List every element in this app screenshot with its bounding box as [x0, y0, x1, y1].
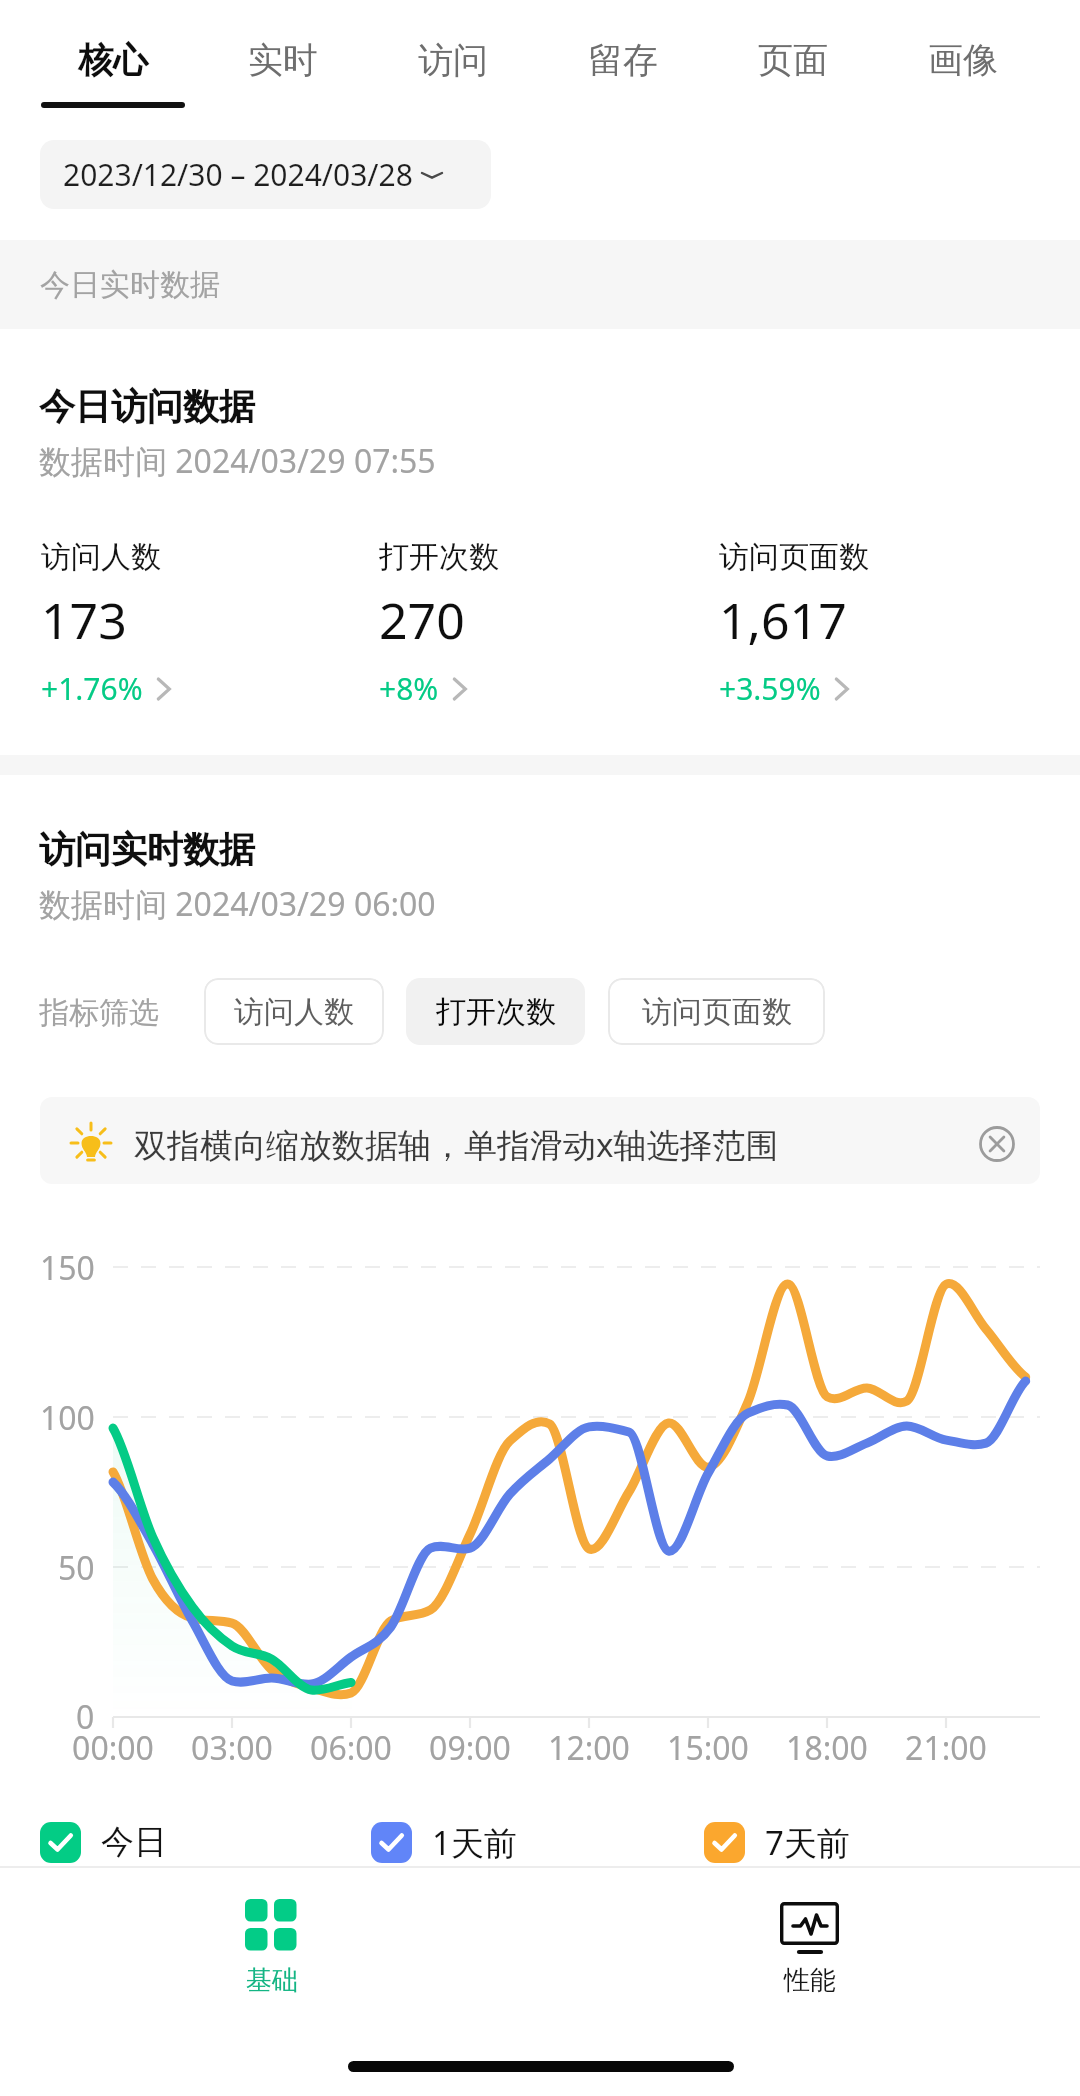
staticText: 150 — [40, 1246, 95, 1290]
button[interactable]: 1天前 — [371, 1814, 517, 1870]
staticText: 7天前 — [765, 1820, 850, 1865]
staticText: 今日访问数据 — [39, 384, 255, 429]
staticText: 访问实时数据 — [39, 827, 255, 872]
staticText: 03:00 — [191, 1726, 273, 1770]
staticText: 留存 — [588, 38, 658, 82]
button[interactable]: 今日 — [40, 1814, 167, 1870]
button[interactable]: 实时 — [200, 0, 366, 118]
staticText: 06:00 — [310, 1726, 392, 1770]
button[interactable]: 访问 — [370, 0, 536, 118]
button[interactable]: 关闭提示 — [969, 1116, 1025, 1172]
staticText: +1.76% — [41, 668, 143, 709]
staticText: 0 — [76, 1695, 95, 1739]
staticText: 15:00 — [667, 1726, 749, 1770]
staticText: 画像 — [928, 38, 998, 82]
staticText: 实时 — [248, 38, 318, 82]
button[interactable]: 访问人数 — [40, 538, 370, 708]
button[interactable]: 留存 — [540, 0, 706, 118]
staticText: 00:00 — [72, 1726, 154, 1770]
staticText: 18:00 — [786, 1726, 868, 1770]
button[interactable]: 打开次数 — [406, 978, 585, 1045]
staticText: 指标筛选 — [39, 994, 159, 1032]
staticText: 1,617 — [719, 586, 847, 654]
button[interactable]: 画像 — [880, 0, 1046, 118]
staticText: 数据时间 2024/03/29 07:55 — [39, 439, 436, 483]
staticText: 双指横向缩放数据轴，单指滑动x轴选择范围 — [134, 1122, 779, 1167]
staticText: 访问人数 — [41, 538, 161, 576]
button[interactable]: 页面 — [710, 0, 876, 118]
staticText: 173 — [41, 586, 127, 654]
staticText: +3.59% — [719, 668, 821, 709]
button[interactable]: 访问人数 — [204, 978, 384, 1045]
staticText: +8% — [379, 668, 439, 709]
staticText: 打开次数 — [379, 538, 499, 576]
button[interactable]: 打开次数 — [378, 538, 708, 708]
staticText: 访问页面数 — [719, 538, 869, 576]
staticText: 访问 — [418, 38, 488, 82]
staticText: 基础 — [246, 1964, 298, 1997]
staticText: 访问页面数 — [642, 993, 792, 1031]
staticText: 270 — [379, 586, 465, 654]
staticText: 数据时间 2024/03/29 06:00 — [39, 882, 436, 926]
staticText: 100 — [40, 1396, 95, 1440]
button[interactable]: 核心 — [30, 0, 196, 118]
staticText: 1天前 — [432, 1820, 517, 1865]
staticText: 打开次数 — [436, 993, 556, 1031]
staticText: 09:00 — [429, 1726, 511, 1770]
staticText: 50 — [58, 1546, 95, 1590]
staticText: 今日实时数据 — [40, 266, 220, 304]
button[interactable]: 基础 — [191, 1888, 351, 2014]
staticText: 2023/12/30 – 2024/03/28 — [63, 154, 413, 195]
staticText: 今日 — [101, 1821, 167, 1863]
staticText: 核心 — [78, 38, 148, 82]
button[interactable]: 2023/12/30 – 2024/03/28 — [40, 140, 491, 209]
button[interactable]: 性能 — [730, 1888, 890, 2014]
button[interactable]: 7天前 — [704, 1814, 850, 1870]
button[interactable]: 访问页面数 — [718, 538, 1048, 708]
staticText: 性能 — [784, 1964, 836, 1997]
staticText: 12:00 — [548, 1726, 630, 1770]
staticText: 页面 — [758, 38, 828, 82]
staticText: 访问人数 — [234, 993, 354, 1031]
staticText: 21:00 — [905, 1726, 987, 1770]
button[interactable]: 访问页面数 — [608, 978, 825, 1045]
